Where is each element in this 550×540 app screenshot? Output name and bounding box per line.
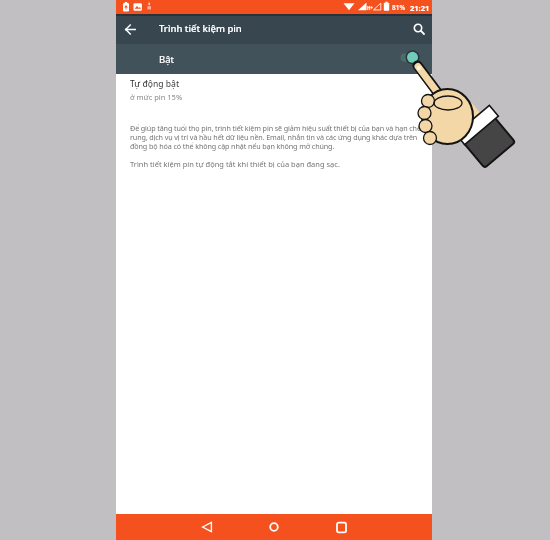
staticText: Để giúp tăng tuổi thọ pin, trình tiết ki… xyxy=(130,123,432,151)
button[interactable]: Tự động bật xyxy=(116,74,432,102)
staticText: Trình tiết kiệm pin xyxy=(159,22,242,35)
staticText: 21:21 xyxy=(410,3,430,13)
staticText: Trình tiết kiệm pin tự động tắt khi thiế… xyxy=(130,159,340,169)
button[interactable]: Bật xyxy=(116,44,432,74)
button[interactable] xyxy=(121,20,139,38)
staticText: Tự động bật xyxy=(130,78,180,90)
staticText: H+ xyxy=(367,5,374,11)
button[interactable] xyxy=(318,514,364,540)
button[interactable] xyxy=(184,514,230,540)
staticText: ở mức pin 15% xyxy=(130,92,183,102)
staticText: 81% xyxy=(392,3,405,12)
button[interactable] xyxy=(251,514,297,540)
button[interactable] xyxy=(409,19,429,39)
staticText: Bật xyxy=(159,53,174,66)
